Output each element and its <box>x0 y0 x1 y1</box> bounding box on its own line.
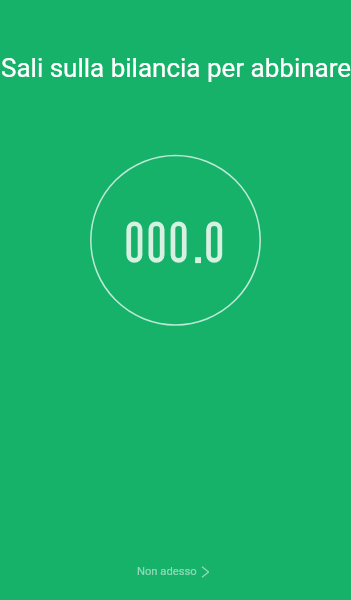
other: Avanti <box>200 566 210 578</box>
button[interactable]: Non adesso <box>121 555 226 588</box>
staticText: Sali sulla bilancia per abbinare <box>1 53 351 83</box>
staticText: Non adesso <box>137 565 197 578</box>
